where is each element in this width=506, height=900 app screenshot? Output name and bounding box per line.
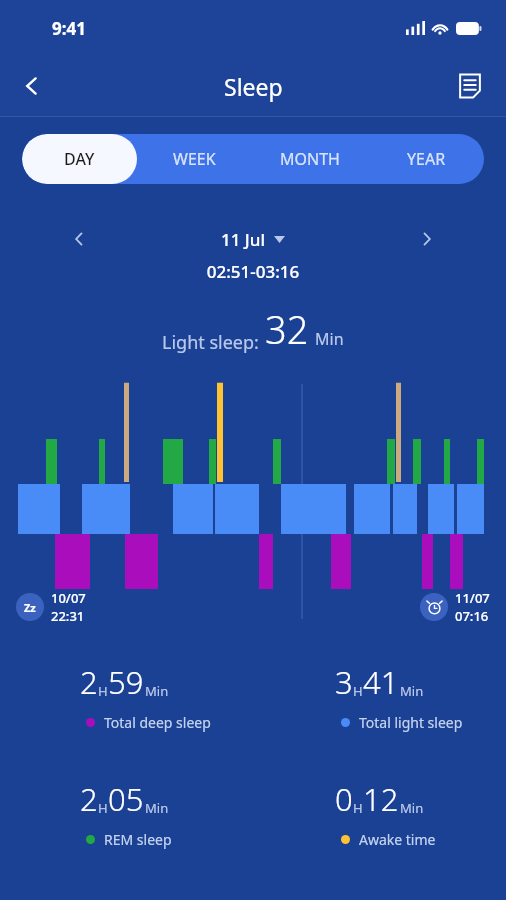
staticText: REM sleep xyxy=(104,830,172,849)
staticText: Sleep xyxy=(224,71,283,102)
staticText: H xyxy=(98,799,108,817)
staticText: Total deep sleep xyxy=(104,713,211,732)
staticText: Light sleep: xyxy=(162,330,259,355)
button[interactable]: MONTH xyxy=(252,134,368,184)
staticText: 05 xyxy=(108,778,144,820)
staticText: 59 xyxy=(108,661,144,703)
staticText: 2 xyxy=(80,778,98,820)
staticText: 11 Jul xyxy=(221,228,266,251)
staticText: H xyxy=(353,682,363,700)
staticText: Min xyxy=(400,682,424,700)
staticText: Min xyxy=(315,328,344,350)
staticText: DAY xyxy=(64,148,95,170)
staticText: 22:31 xyxy=(51,607,85,625)
staticText: Min xyxy=(145,682,169,700)
staticText: H xyxy=(353,799,363,817)
staticText: H xyxy=(98,682,108,700)
button[interactable]: Notes xyxy=(448,64,492,108)
staticText: 32 xyxy=(265,303,309,355)
button[interactable]: 2 xyxy=(80,661,211,732)
button[interactable]: Next day xyxy=(410,224,444,254)
staticText: 11/07 xyxy=(455,589,490,607)
staticText: 0 xyxy=(335,778,353,820)
button[interactable]: Previous day xyxy=(62,224,96,254)
staticText: Zz xyxy=(24,600,36,615)
button[interactable]: 0 xyxy=(335,778,436,849)
staticText: 3 xyxy=(335,661,353,703)
staticText: 10/07 xyxy=(51,589,86,607)
staticText: Min xyxy=(145,799,169,817)
button[interactable]: WEEK xyxy=(137,134,252,184)
staticText: Total light sleep xyxy=(359,713,463,732)
button[interactable]: 11 Jul xyxy=(221,228,285,251)
staticText: Min xyxy=(400,799,424,817)
staticText: 2 xyxy=(80,661,98,703)
staticText: YEAR xyxy=(407,148,446,170)
button[interactable]: 3 xyxy=(335,661,463,732)
staticText: 02:51-03:16 xyxy=(0,260,506,283)
staticText: 41 xyxy=(363,661,399,703)
button[interactable]: YEAR xyxy=(368,134,484,184)
staticText: Awake time xyxy=(359,830,436,849)
button[interactable]: DAY xyxy=(22,134,137,184)
staticText: 12 xyxy=(363,778,399,820)
staticText: 07:16 xyxy=(455,607,489,625)
staticText: MONTH xyxy=(280,148,340,170)
staticText: WEEK xyxy=(173,148,216,170)
button[interactable]: 2 xyxy=(80,778,172,849)
button[interactable]: Back xyxy=(10,64,54,108)
staticText: 9:41 xyxy=(52,17,86,40)
